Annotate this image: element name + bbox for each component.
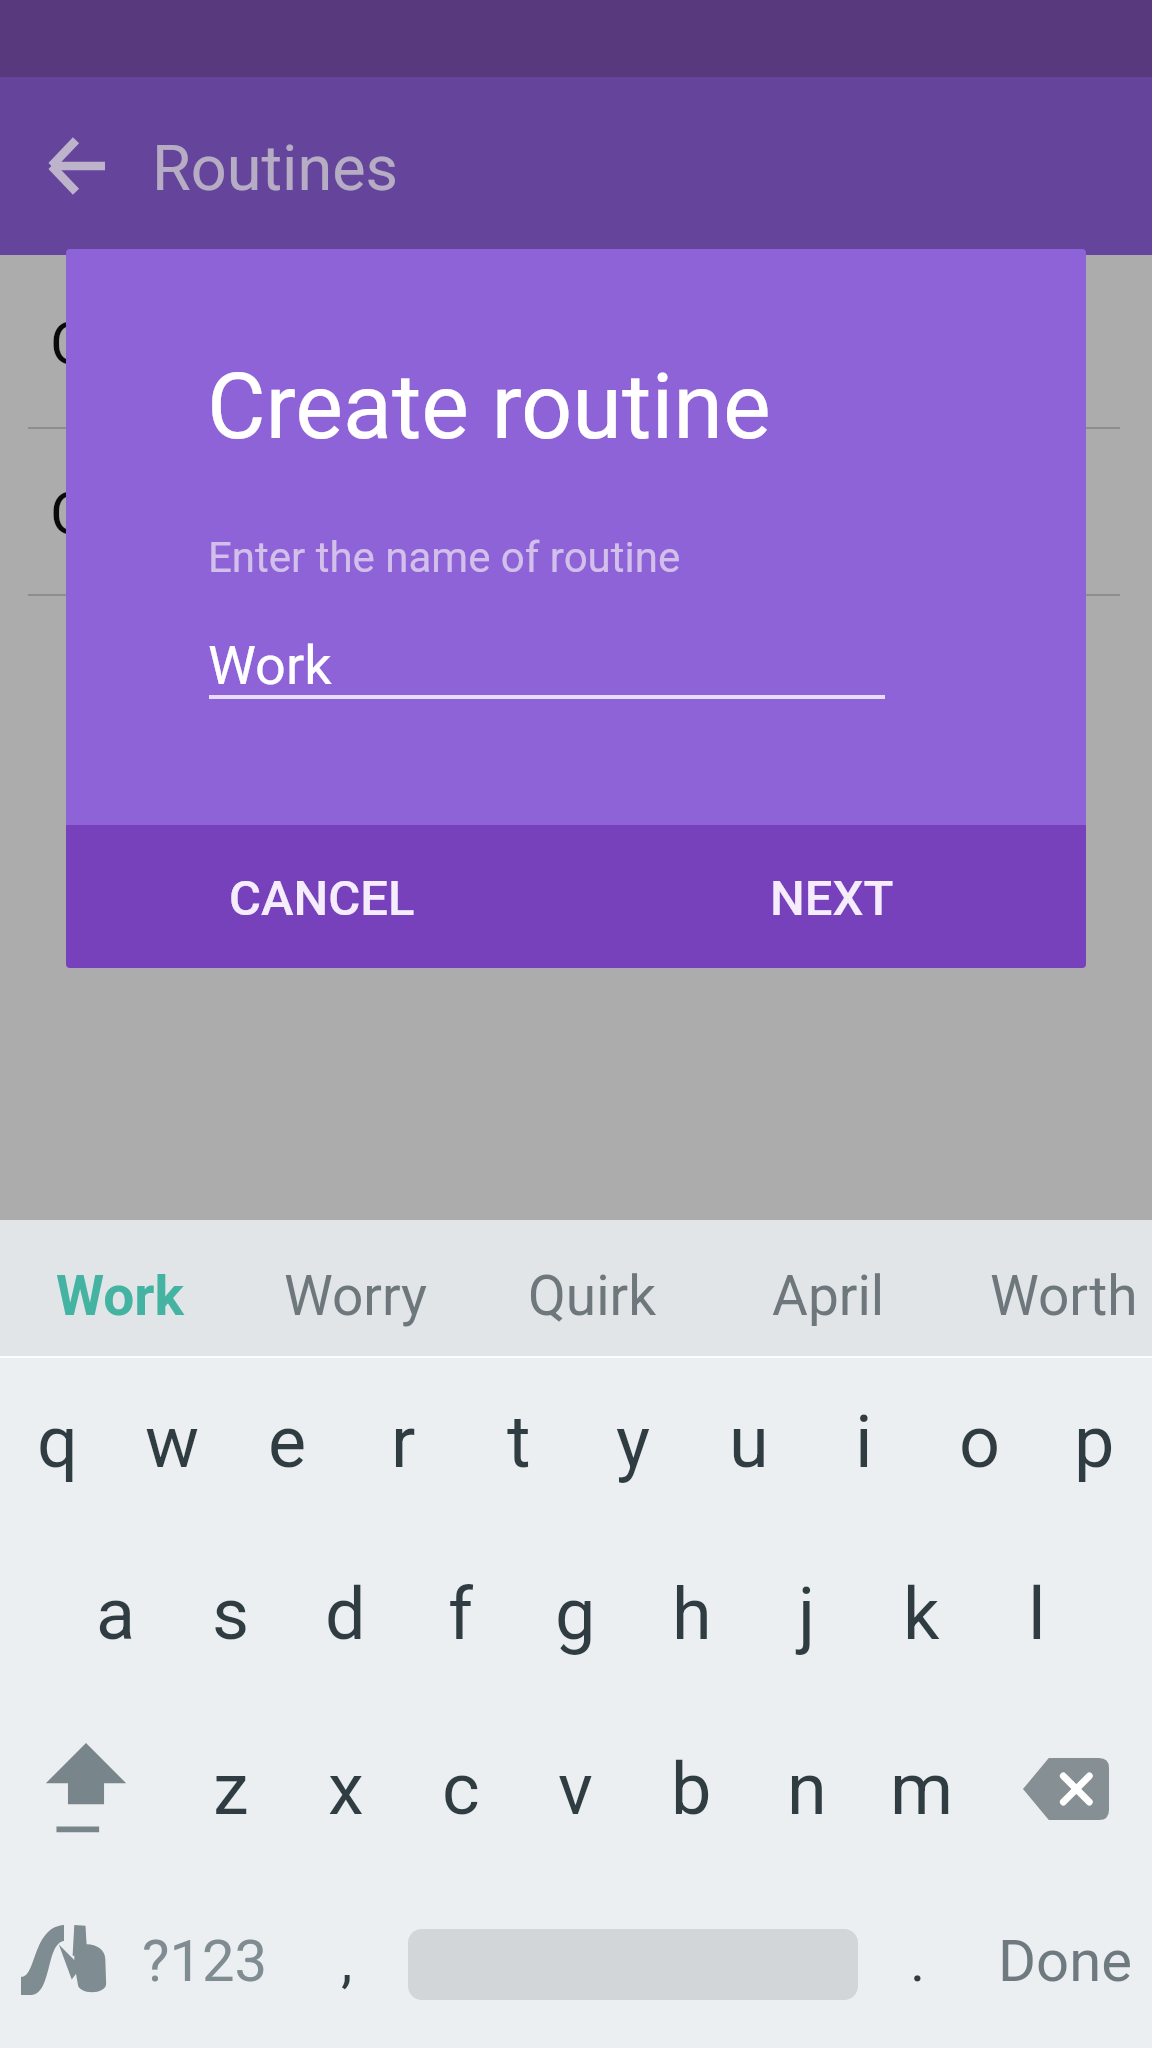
staticText: Office: [50, 308, 206, 378]
button[interactable]: s: [173, 1556, 288, 1671]
button[interactable]: e: [230, 1384, 345, 1499]
button[interactable]: b: [634, 1731, 749, 1846]
staticText: f: [448, 1572, 474, 1656]
staticText: r: [391, 1400, 416, 1484]
staticText: h: [672, 1572, 712, 1656]
button[interactable]: v: [518, 1731, 633, 1846]
button[interactable]: Work: [2, 1220, 238, 1356]
button[interactable]: o: [922, 1384, 1037, 1499]
staticText: Work: [56, 1264, 184, 1328]
staticText: Routines: [152, 132, 399, 206]
button[interactable]: y: [576, 1384, 691, 1499]
button[interactable]: c: [403, 1731, 518, 1846]
staticText: w: [145, 1400, 200, 1484]
button[interactable]: n: [749, 1731, 864, 1846]
staticText: t: [507, 1400, 531, 1484]
staticText: v: [558, 1747, 593, 1831]
staticText: Others: [50, 478, 228, 548]
staticText: .: [910, 1927, 926, 1995]
button[interactable]: i: [806, 1384, 921, 1499]
staticText: p: [1074, 1400, 1115, 1484]
staticText: Create routine: [207, 355, 771, 460]
staticText: NEXT: [770, 870, 894, 927]
staticText: c: [442, 1747, 480, 1831]
button[interactable]: Gesture typing: [4, 1886, 124, 2034]
button[interactable]: p: [1037, 1384, 1152, 1499]
staticText: g: [555, 1572, 596, 1656]
button[interactable]: ,: [288, 1887, 406, 2035]
button[interactable]: April: [710, 1220, 946, 1356]
button[interactable]: NEXT: [738, 838, 926, 955]
staticText: j: [798, 1572, 816, 1656]
staticText: i: [855, 1400, 873, 1484]
button[interactable]: Quirk: [474, 1220, 710, 1356]
staticText: Enter the name of routine: [208, 533, 681, 582]
staticText: m: [890, 1747, 954, 1831]
staticText: k: [903, 1572, 940, 1656]
staticText: q: [37, 1400, 78, 1484]
button[interactable]: u: [691, 1384, 806, 1499]
staticText: y: [616, 1400, 651, 1484]
button[interactable]: d: [288, 1556, 403, 1671]
button[interactable]: Worth: [946, 1220, 1152, 1356]
button[interactable]: Shift: [0, 1731, 172, 1846]
staticText: Work: [208, 634, 332, 697]
staticText: ,: [341, 1927, 353, 1995]
button[interactable]: l: [979, 1556, 1094, 1671]
staticText: a: [96, 1572, 136, 1656]
staticText: Quirk: [528, 1264, 657, 1328]
button[interactable]: j: [749, 1556, 864, 1671]
staticText: s: [212, 1572, 250, 1656]
button[interactable]: h: [634, 1556, 749, 1671]
button[interactable]: Backspace: [979, 1731, 1152, 1846]
button[interactable]: Worry: [238, 1220, 474, 1356]
button[interactable]: ?123: [135, 1887, 275, 2035]
staticText: ?123: [142, 1927, 268, 1995]
button[interactable]: a: [58, 1556, 173, 1671]
button[interactable]: z: [173, 1731, 288, 1846]
button[interactable]: g: [518, 1556, 633, 1671]
button[interactable]: k: [864, 1556, 979, 1671]
staticText: b: [671, 1747, 712, 1831]
button[interactable]: Office: [0, 256, 1152, 429]
button[interactable]: Back: [28, 118, 124, 214]
staticText: April: [772, 1264, 885, 1328]
staticText: n: [787, 1747, 827, 1831]
staticText: CANCEL: [229, 870, 415, 927]
staticText: x: [328, 1747, 364, 1831]
button[interactable]: m: [864, 1731, 979, 1846]
button[interactable]: t: [461, 1384, 576, 1499]
staticText: Worth: [990, 1264, 1138, 1328]
button[interactable]: f: [403, 1556, 518, 1671]
staticText: Done: [998, 1927, 1132, 1995]
staticText: d: [325, 1572, 366, 1656]
staticText: Worry: [284, 1264, 428, 1328]
button[interactable]: x: [288, 1731, 403, 1846]
staticText: o: [959, 1400, 1001, 1484]
button[interactable]: Others: [0, 429, 1152, 596]
button[interactable]: .: [858, 1887, 978, 2035]
button[interactable]: r: [346, 1384, 461, 1499]
staticText: e: [268, 1400, 307, 1484]
button[interactable]: q: [0, 1384, 115, 1499]
button[interactable]: CANCEL: [198, 838, 446, 955]
staticText: l: [1028, 1572, 1046, 1656]
button[interactable]: w: [115, 1384, 230, 1499]
staticText: z: [213, 1747, 249, 1831]
staticText: u: [729, 1400, 769, 1484]
button[interactable]: Done: [978, 1887, 1152, 2035]
